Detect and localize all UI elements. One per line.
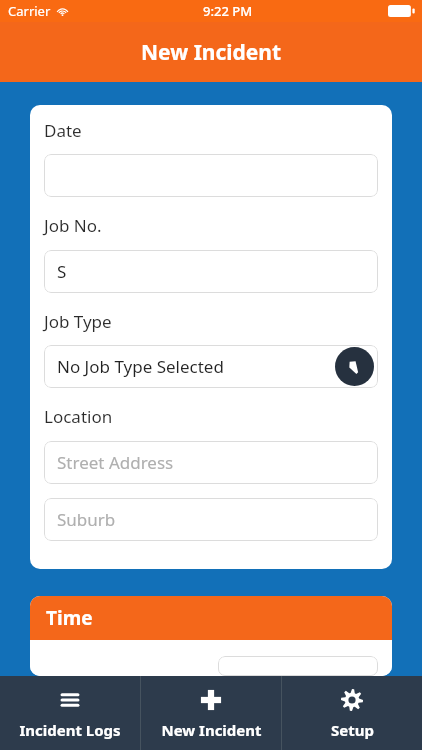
staticText: 9:22 PM xyxy=(203,2,253,20)
button[interactable]: Incident Logs xyxy=(0,676,140,750)
button[interactable]: Suburb xyxy=(44,498,378,541)
button[interactable]: Street Address xyxy=(44,441,378,484)
staticText: Job No. xyxy=(44,214,102,237)
staticText: Location xyxy=(44,405,113,428)
button[interactable]: No Job Type Selected xyxy=(44,345,378,388)
button[interactable]: New Incident xyxy=(141,676,281,750)
staticText: New Incident xyxy=(161,720,262,740)
button[interactable]: Edit job type xyxy=(335,347,374,386)
staticText: New Incident xyxy=(141,38,282,67)
staticText: Time xyxy=(46,605,93,631)
staticText: S xyxy=(57,260,67,283)
staticText: Setup xyxy=(331,720,374,740)
staticText: Street Address xyxy=(57,451,174,474)
button[interactable] xyxy=(44,154,378,197)
staticText: Suburb xyxy=(57,508,116,531)
staticText: Job Type xyxy=(44,310,112,333)
staticText: Carrier xyxy=(8,2,51,20)
staticText: Incident Logs xyxy=(19,720,121,740)
staticText: No Job Type Selected xyxy=(57,355,224,378)
staticText: Date xyxy=(44,119,82,142)
button[interactable]: Setup xyxy=(282,676,422,750)
button[interactable]: S xyxy=(44,250,378,293)
